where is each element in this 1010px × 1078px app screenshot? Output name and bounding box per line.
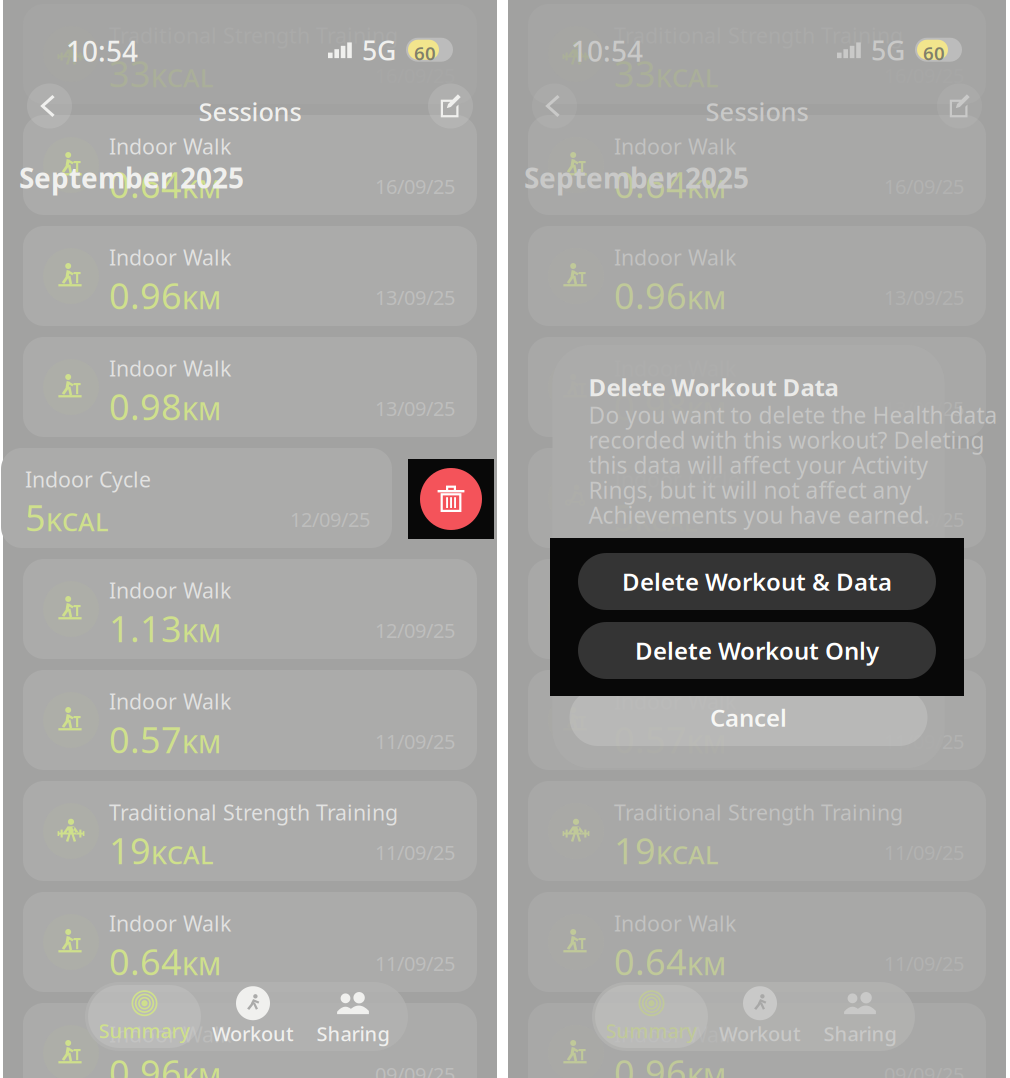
staticText: Delete Workout Data [588,371,838,403]
staticText: Indoor Walk [614,354,736,382]
button[interactable]: Indoor Walk [528,226,986,326]
staticText: KM [687,726,726,760]
button[interactable]: Delete Workout & Data [578,553,936,610]
staticText: Rings, but it will not affect any [588,475,911,505]
staticText: Traditional Strength Training [109,21,398,49]
staticText: September 2025 [19,159,244,196]
button[interactable]: Indoor Walk [528,559,986,659]
button[interactable]: Indoor Walk [528,670,986,770]
staticText: 33 [109,49,151,97]
button[interactable]: Cancel [569,689,927,746]
button[interactable]: Delete Workout & Data [569,551,927,608]
button[interactable]: Traditional Strength Training [528,4,986,104]
button[interactable]: Back [532,83,577,128]
staticText: KM [687,948,726,982]
staticText: Delete Workout Only [626,633,870,664]
staticText: 19 [109,826,151,874]
button[interactable]: Workout [708,985,812,1048]
button[interactable]: Traditional Strength Training [23,781,477,881]
staticText: 60 [414,41,436,65]
staticText: 0.96 [109,271,182,319]
button[interactable]: Indoor Walk [528,892,986,992]
staticText: Indoor Walk [614,576,736,604]
button[interactable]: Indoor Walk [23,226,477,326]
staticText: KM [687,615,726,649]
button[interactable]: Summary [595,985,708,1048]
button[interactable]: Indoor Walk [528,337,986,437]
button[interactable]: Indoor Walk [23,1003,477,1078]
staticText: KM [687,1059,726,1078]
button[interactable]: Workout [201,985,305,1048]
staticText: 0.64 [109,937,182,985]
button[interactable]: Delete workout [408,459,494,539]
staticText: KM [182,171,221,205]
button[interactable]: Indoor Walk [23,337,477,437]
staticText: 11/09/25 [375,950,455,977]
staticText: 0.96 [614,1048,687,1078]
staticText: 1.13 [109,604,182,652]
staticText: 11/09/25 [375,839,455,866]
button[interactable]: Indoor Walk [23,892,477,992]
staticText: Indoor Walk [109,243,231,271]
staticText: Summary [605,1017,697,1044]
staticText: KCAL [656,60,719,94]
staticText: KM [182,615,221,649]
staticText: 5 [614,493,635,541]
staticText: 12/09/25 [290,506,370,533]
button[interactable]: Sharing [301,985,405,1048]
button[interactable]: Summary [88,985,201,1048]
staticText: 0.98 [109,382,182,430]
button[interactable]: Edit [428,83,473,128]
staticText: KM [687,171,726,205]
button[interactable]: Indoor Walk [528,1003,986,1078]
staticText: 60 [923,41,945,65]
staticText: 13/09/25 [375,284,455,311]
staticText: Indoor Walk [109,576,231,604]
staticText: KM [182,393,221,427]
staticText: KM [687,393,726,427]
staticText: KM [182,726,221,760]
staticText: 11/09/25 [884,950,964,977]
staticText: 0.96 [109,1048,182,1078]
staticText: Sharing [823,1020,896,1047]
staticText: 13/09/25 [884,395,964,422]
staticText: Indoor Walk [109,132,231,160]
staticText: KM [182,282,221,316]
staticText: Indoor Walk [109,687,231,715]
staticText: 09/09/25 [375,1061,455,1078]
staticText: Achievements you have earned. [588,500,929,530]
button[interactable]: Edit [937,83,982,128]
button[interactable]: Traditional Strength Training [528,781,986,881]
staticText: KCAL [635,504,698,538]
staticText: Cancel [710,702,787,733]
button[interactable]: Back [27,83,72,128]
button[interactable]: Delete Workout Only [578,622,936,679]
staticText: Indoor Cycle [614,465,740,493]
staticText: Indoor Walk [614,909,736,937]
button[interactable]: Indoor Walk [23,670,477,770]
button[interactable]: Indoor Cycle [528,448,986,548]
staticText: Indoor Walk [109,1020,231,1048]
button[interactable]: Indoor Cycle [1,448,392,548]
staticText: 5G [362,32,396,68]
button[interactable]: Traditional Strength Training [23,4,477,104]
staticText: 10:54 [571,32,643,70]
staticText: Delete Workout Only [635,635,879,666]
button[interactable]: Sharing [808,985,912,1048]
staticText: 11/09/25 [375,728,455,755]
button[interactable]: Indoor Walk [23,115,477,215]
staticText: 1.13 [614,604,687,652]
staticText: Indoor Walk [614,687,736,715]
staticText: Indoor Walk [109,354,231,382]
button[interactable]: Indoor Walk [528,115,986,215]
staticText: Traditional Strength Training [614,798,903,826]
button[interactable]: Indoor Walk [23,559,477,659]
staticText: Delete Workout & Data [613,564,883,595]
staticText: 0.64 [614,160,687,208]
staticText: 0.64 [109,160,182,208]
staticText: 12/09/25 [375,617,455,644]
button[interactable]: Delete Workout Only [569,620,927,677]
staticText: Indoor Walk [614,132,736,160]
staticText: KM [687,282,726,316]
